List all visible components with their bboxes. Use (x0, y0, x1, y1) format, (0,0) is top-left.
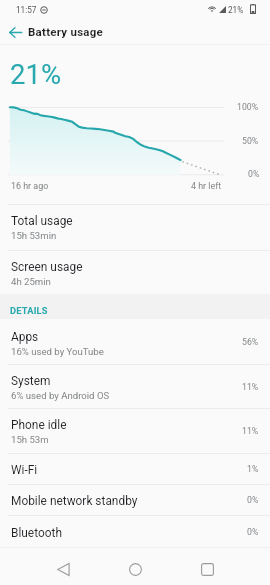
staticText: 0% (247, 527, 259, 537)
button[interactable]: Phone idle (0, 409, 270, 453)
staticText: 21% (10, 58, 62, 90)
button[interactable]: Bluetooth (0, 516, 270, 547)
staticText: Mobile network standby (11, 494, 138, 508)
button[interactable]: Back (4, 21, 26, 43)
button[interactable]: System (0, 365, 270, 408)
button[interactable]: Apps (0, 319, 270, 364)
staticText: Wi-Fi (11, 463, 38, 477)
button[interactable]: Total usage (0, 205, 270, 250)
staticText: 15h 53m (11, 434, 49, 445)
staticText: Bluetooth (11, 526, 62, 540)
button[interactable]: Mobile network standby (0, 485, 270, 515)
staticText: 1% (247, 464, 259, 474)
staticText: 11% (242, 426, 259, 436)
button[interactable]: Screen usage (0, 251, 270, 294)
staticText: 4h 25min (11, 276, 51, 287)
staticText: 16 hr ago (11, 181, 49, 191)
button[interactable]: Back (48, 556, 79, 582)
staticText: 21% (228, 5, 244, 15)
button[interactable]: 21% (10, 58, 62, 90)
staticText: 16% used by YouTube (11, 346, 104, 357)
staticText: 100% (237, 102, 259, 112)
staticText: Total usage (11, 214, 73, 228)
staticText: 0% (247, 495, 259, 505)
staticText: Battery usage (28, 25, 103, 38)
staticText: Screen usage (11, 260, 83, 274)
staticText: 15h 53min (11, 230, 57, 241)
staticText: Apps (11, 330, 39, 344)
staticText: 56% (242, 337, 259, 347)
staticText: 6% used by Android OS (11, 390, 110, 401)
staticText: 11:57 (16, 5, 37, 15)
button[interactable]: Recents (192, 556, 223, 582)
staticText: DETAILS (10, 305, 48, 316)
staticText: 0% (248, 169, 260, 179)
staticText: 50% (242, 136, 259, 146)
staticText: 11% (242, 382, 259, 392)
staticText: Phone idle (11, 418, 67, 432)
staticText: 4 hr left (191, 181, 222, 191)
button[interactable]: Wi-Fi (0, 454, 270, 484)
staticText: System (11, 374, 51, 388)
button[interactable]: Home (120, 556, 151, 582)
